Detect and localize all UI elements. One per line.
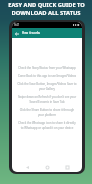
staticText: How it works <box>22 31 40 35</box>
staticText: Come Back to this app to see Images/Vide… <box>17 74 77 78</box>
staticText: Check the Whatsapp icon to share it dire… <box>17 121 77 130</box>
button[interactable]: Recent apps <box>62 162 72 172</box>
staticText: Swipe down on Refresh if you don't see y… <box>17 95 77 104</box>
button[interactable]: Home <box>42 162 52 172</box>
staticText: EASY AND QUICK GUIDE TO <box>8 1 85 9</box>
staticText: Click the Share Button to share it throu… <box>17 108 77 117</box>
staticText: Click the Save Button, Images/Videos Sav… <box>17 82 77 91</box>
staticText: 9:41 <box>14 23 20 27</box>
staticText: DOWNLOAD ALL STATUS <box>11 9 81 17</box>
staticText: Check the Story/Status from your Whatsap… <box>17 66 77 70</box>
button[interactable]: Back <box>22 162 32 172</box>
button[interactable]: Back <box>12 29 21 38</box>
